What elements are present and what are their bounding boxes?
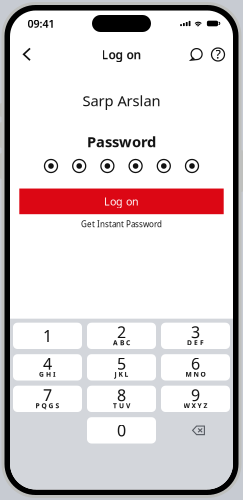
button[interactable]: 8: [87, 386, 156, 412]
button[interactable]: 9: [161, 386, 230, 412]
button[interactable]: Delete: [161, 417, 230, 443]
staticText: 09:41: [27, 16, 54, 31]
staticText: Log on: [104, 194, 139, 208]
staticText: 0: [117, 420, 126, 441]
button[interactable]: 1: [13, 323, 82, 349]
button[interactable]: Get Instant Password: [81, 218, 162, 230]
staticText: ?: [215, 46, 220, 62]
staticText: G H I: [39, 370, 56, 379]
button[interactable]: Help: [208, 43, 228, 65]
staticText: Password: [87, 132, 156, 151]
button[interactable]: 7: [13, 386, 82, 412]
button[interactable]: 4: [13, 354, 82, 380]
staticText: 5: [117, 353, 126, 374]
staticText: 4: [43, 353, 52, 374]
staticText: 8: [117, 384, 126, 406]
button[interactable]: 5: [87, 354, 156, 380]
staticText: J K L: [114, 370, 128, 379]
button[interactable]: Back: [14, 43, 36, 65]
staticText: T U V: [113, 401, 130, 410]
staticText: 9: [191, 384, 200, 406]
staticText: 7: [43, 384, 52, 406]
staticText: P Q G S: [35, 401, 59, 410]
staticText: 3: [191, 321, 200, 343]
button[interactable]: 0: [87, 417, 156, 443]
button[interactable]: Chat: [186, 43, 206, 65]
staticText: D E F: [187, 338, 204, 347]
staticText: 2: [117, 321, 126, 343]
button[interactable]: 2: [87, 323, 156, 349]
staticText: 6: [191, 353, 200, 374]
button[interactable]: 3: [161, 323, 230, 349]
staticText: Get Instant Password: [81, 219, 162, 229]
staticText: Log on: [101, 46, 141, 62]
staticText: A B C: [113, 338, 130, 347]
button[interactable]: 6: [161, 354, 230, 380]
staticText: W X Y Z: [183, 401, 207, 410]
staticText: 1: [43, 325, 52, 346]
button[interactable]: Log on: [19, 188, 224, 214]
staticText: Sarp Arslan: [82, 91, 160, 110]
staticText: M N O: [185, 370, 205, 379]
